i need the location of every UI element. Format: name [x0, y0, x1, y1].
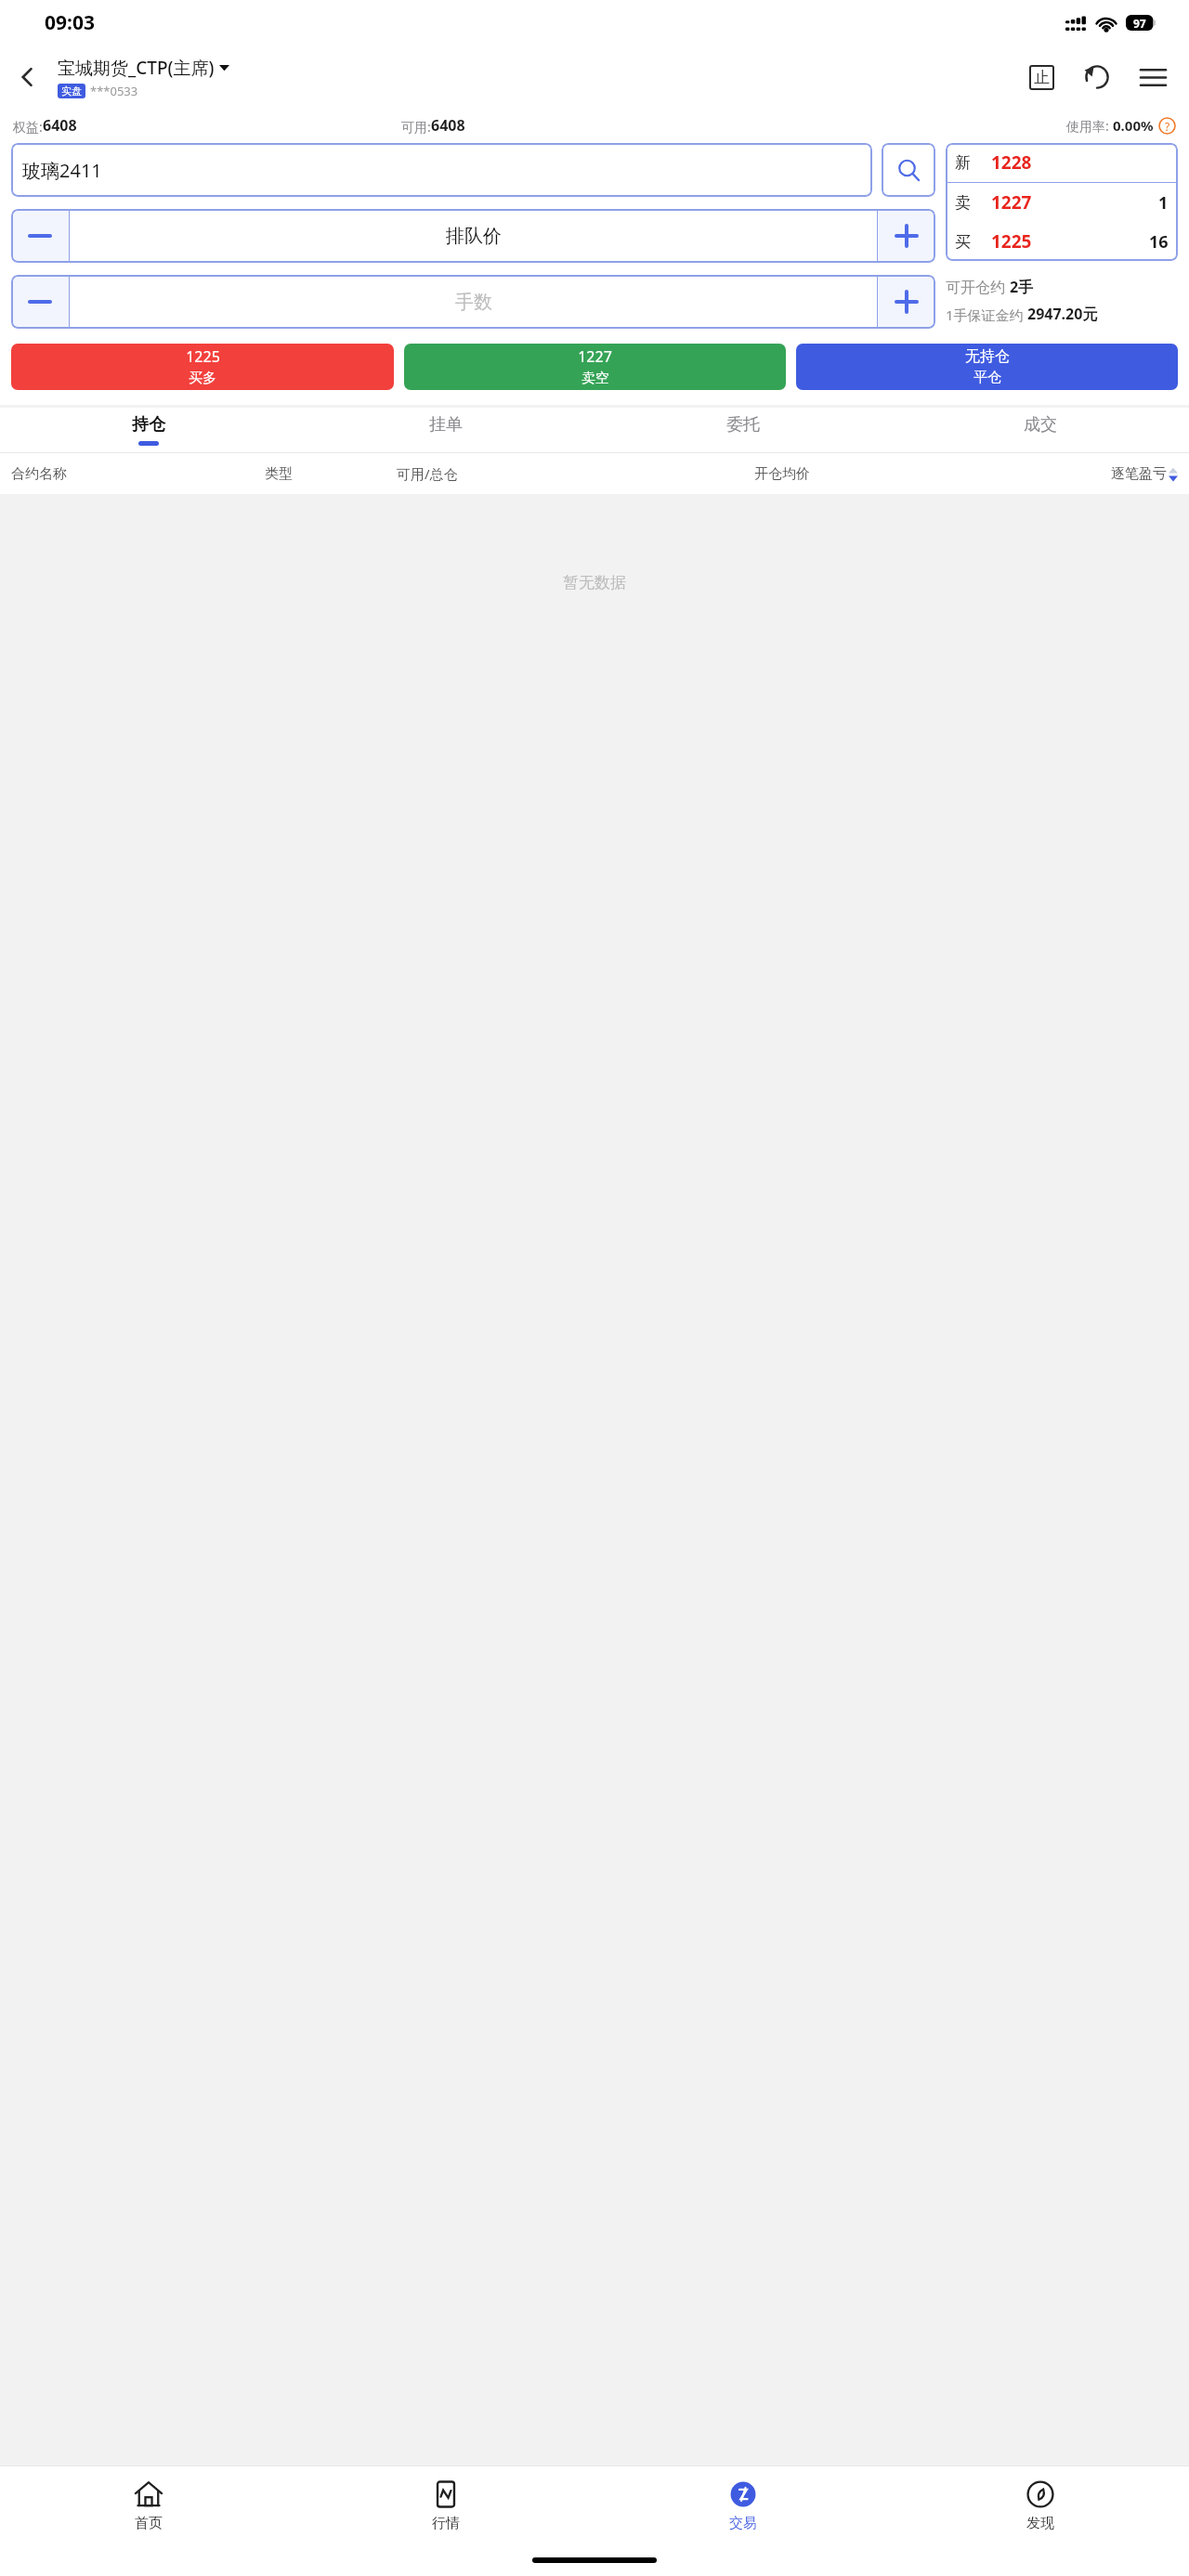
staticText: ?	[1165, 119, 1170, 134]
staticText: 使用率:	[1066, 117, 1113, 135]
staticText: 1227	[578, 346, 612, 367]
staticText: 买	[955, 232, 971, 252]
staticText: 16	[1149, 230, 1169, 254]
staticText: 1225	[186, 346, 220, 367]
staticText: 买多	[189, 370, 216, 387]
staticText: 可用:	[401, 118, 431, 136]
button[interactable]: Menu	[1131, 56, 1174, 98]
staticText: 1228	[991, 150, 1032, 175]
button[interactable]: 交易	[594, 2466, 892, 2544]
staticText: 97	[1133, 16, 1146, 31]
staticText: 手数	[455, 291, 492, 314]
staticText: 6408	[43, 115, 77, 136]
staticText: 首页	[135, 2515, 163, 2532]
staticText: 交易	[729, 2515, 757, 2532]
button[interactable]: 宝城期货_CTP(主席)	[58, 56, 229, 80]
staticText: 可开仓约	[946, 277, 1010, 297]
button[interactable]: 持仓	[0, 408, 297, 452]
button[interactable]: Decrease 手数	[11, 275, 69, 329]
staticText: 成交	[1024, 414, 1057, 436]
button[interactable]: 逐笔盈亏	[914, 465, 1178, 483]
button[interactable]: 新	[946, 143, 1178, 261]
staticText: 发现	[1026, 2515, 1054, 2532]
button[interactable]: 止损设置	[1020, 56, 1063, 98]
staticText: 持仓	[132, 414, 165, 436]
button[interactable]: 使用率说明	[1158, 117, 1176, 135]
staticText: 平仓	[973, 369, 1001, 386]
button[interactable]: Back	[7, 57, 48, 98]
button[interactable]: 首页	[0, 2466, 297, 2544]
button[interactable]: Increase 手数	[878, 275, 935, 329]
staticText: 止	[1034, 68, 1050, 87]
staticText: 委托	[726, 414, 760, 436]
staticText: 排队价	[446, 225, 502, 248]
staticText: 卖	[955, 193, 971, 213]
button[interactable]: 发现	[892, 2466, 1189, 2544]
staticText: ***0533	[90, 83, 138, 99]
staticText: 玻璃2411	[22, 158, 102, 183]
staticText: 09:03	[45, 9, 95, 36]
button[interactable]: 行情	[297, 2466, 594, 2544]
button[interactable]: 1225	[11, 344, 394, 390]
staticText: 行情	[432, 2515, 460, 2532]
button[interactable]: 排队价	[70, 209, 877, 263]
staticText: 开仓均价	[650, 465, 914, 483]
staticText: 1手保证金约	[946, 306, 1027, 324]
staticText: 2947.20元	[1027, 304, 1098, 324]
staticText: 逐笔盈亏	[1111, 465, 1167, 483]
staticText: 卖空	[581, 370, 609, 387]
staticText: 6408	[431, 115, 465, 136]
staticText: 类型	[265, 465, 397, 483]
staticText: 2手	[1010, 277, 1034, 297]
button[interactable]: Decrease 排队价	[11, 209, 69, 263]
staticText: 宝城期货_CTP(主席)	[58, 56, 215, 80]
staticText: 新	[955, 153, 971, 173]
button[interactable]: 挂单	[297, 408, 594, 452]
button[interactable]: 委托	[594, 408, 892, 452]
button[interactable]: Increase 排队价	[878, 209, 935, 263]
staticText: 无持仓	[965, 347, 1010, 366]
staticText: 可用/总仓	[397, 464, 650, 483]
staticText: 实盘	[61, 85, 82, 98]
staticText: 挂单	[429, 414, 463, 436]
staticText: 1	[1158, 191, 1169, 215]
staticText: 1225	[991, 229, 1032, 254]
staticText: 合约名称	[11, 465, 265, 483]
button[interactable]: 无持仓	[796, 344, 1178, 390]
staticText: 暂无数据	[563, 573, 626, 592]
staticText: 1227	[991, 190, 1032, 215]
button[interactable]: 成交	[892, 408, 1189, 452]
button[interactable]: 玻璃2411	[11, 143, 872, 197]
button[interactable]: 手数	[70, 275, 877, 329]
staticText: 0.00%	[1113, 116, 1154, 135]
button[interactable]: Refresh	[1076, 56, 1118, 98]
button[interactable]: Search	[882, 143, 935, 197]
staticText: 权益:	[13, 118, 43, 136]
button[interactable]: 1227	[404, 344, 786, 390]
